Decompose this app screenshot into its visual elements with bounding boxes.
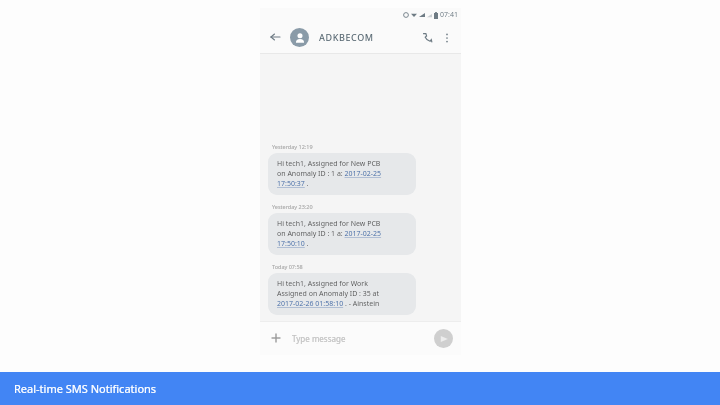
button[interactable]: More options [439,30,454,45]
button[interactable]: Back [267,29,283,45]
staticText: 2017-02-26 01:58:10 . - Ainstein [277,299,380,309]
staticText: 17:50:10 . [277,239,309,249]
staticText: Type message [292,333,346,344]
staticText: Hi tech1, Assigned for Work [277,279,368,289]
staticText: Today 07:58 [272,263,303,270]
button[interactable]: Attach [268,330,284,346]
staticText: on Anomaly ID : 1 a: 2017-02-25 [277,169,382,179]
button[interactable]: Send [434,329,453,348]
staticText: Assigned on Anomaly ID : 35 at [277,289,380,299]
staticText: 07:41 [440,10,458,20]
staticText: 17:50:37 . [277,179,309,189]
button[interactable]: Hi tech1, Assigned for Work [268,273,416,315]
staticText: Hi tech1, Assigned for New PCB [277,219,381,229]
button[interactable]: Call [419,29,436,46]
staticText: Real-time SMS Notifications [14,381,157,396]
staticText: Yesterday 12:19 [272,143,313,150]
staticText: on Anomaly ID : 1 a: 2017-02-25 [277,229,382,239]
button[interactable]: Hi tech1, Assigned for New PCB [268,153,416,195]
staticText: Yesterday 23:20 [272,203,313,210]
staticText: ADKBECOM [319,31,374,43]
staticText: Hi tech1, Assigned for New PCB [277,159,381,169]
button[interactable]: Hi tech1, Assigned for New PCB [268,213,416,255]
